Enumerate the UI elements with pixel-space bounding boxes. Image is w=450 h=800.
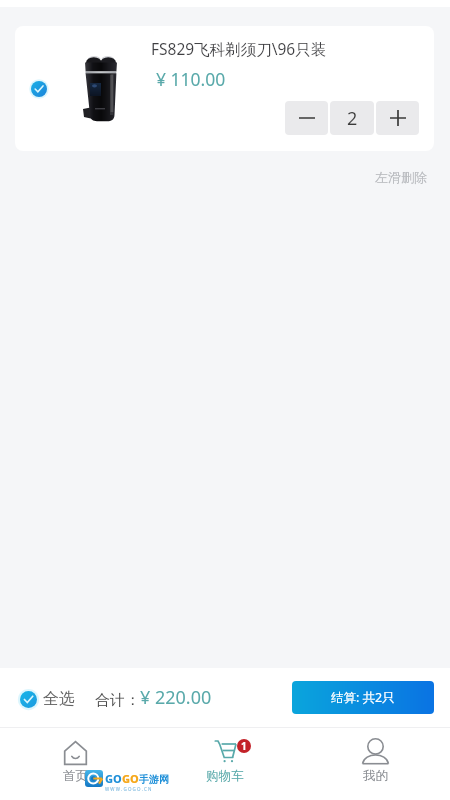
button[interactable]: Increase quantity (376, 101, 419, 135)
staticText: ¥ 110.00 (156, 67, 226, 91)
staticText: 1 (241, 739, 247, 753)
staticText: 购物车 (206, 768, 244, 784)
staticText: GO (122, 771, 139, 786)
staticText: 全选 (43, 689, 75, 709)
staticText: 2 (347, 106, 358, 131)
button[interactable]: 结算: 共2只 (292, 681, 434, 714)
button[interactable]: Decrease quantity (285, 101, 328, 135)
button[interactable]: 我的 (300, 727, 450, 800)
staticText: ¥ 220.00 (140, 685, 212, 710)
staticText: 手游网 (139, 773, 169, 786)
button[interactable]: 全选 (20, 689, 75, 709)
staticText: FS829飞科剃须刀\96只装 (151, 38, 327, 59)
button[interactable]: Select item (21, 71, 57, 107)
staticText: 左滑删除 (375, 169, 427, 185)
staticText: 首页 (63, 768, 88, 784)
button[interactable]: 首页 (0, 727, 150, 800)
staticText: 结算: 共2只 (331, 689, 395, 706)
staticText: W W W . G O G O . C N (105, 786, 152, 792)
staticText: GO (105, 771, 122, 786)
button[interactable]: Select item (15, 26, 434, 151)
staticText: 我的 (363, 768, 388, 784)
button[interactable]: 1 (150, 727, 300, 800)
staticText: 合计： (95, 691, 140, 710)
